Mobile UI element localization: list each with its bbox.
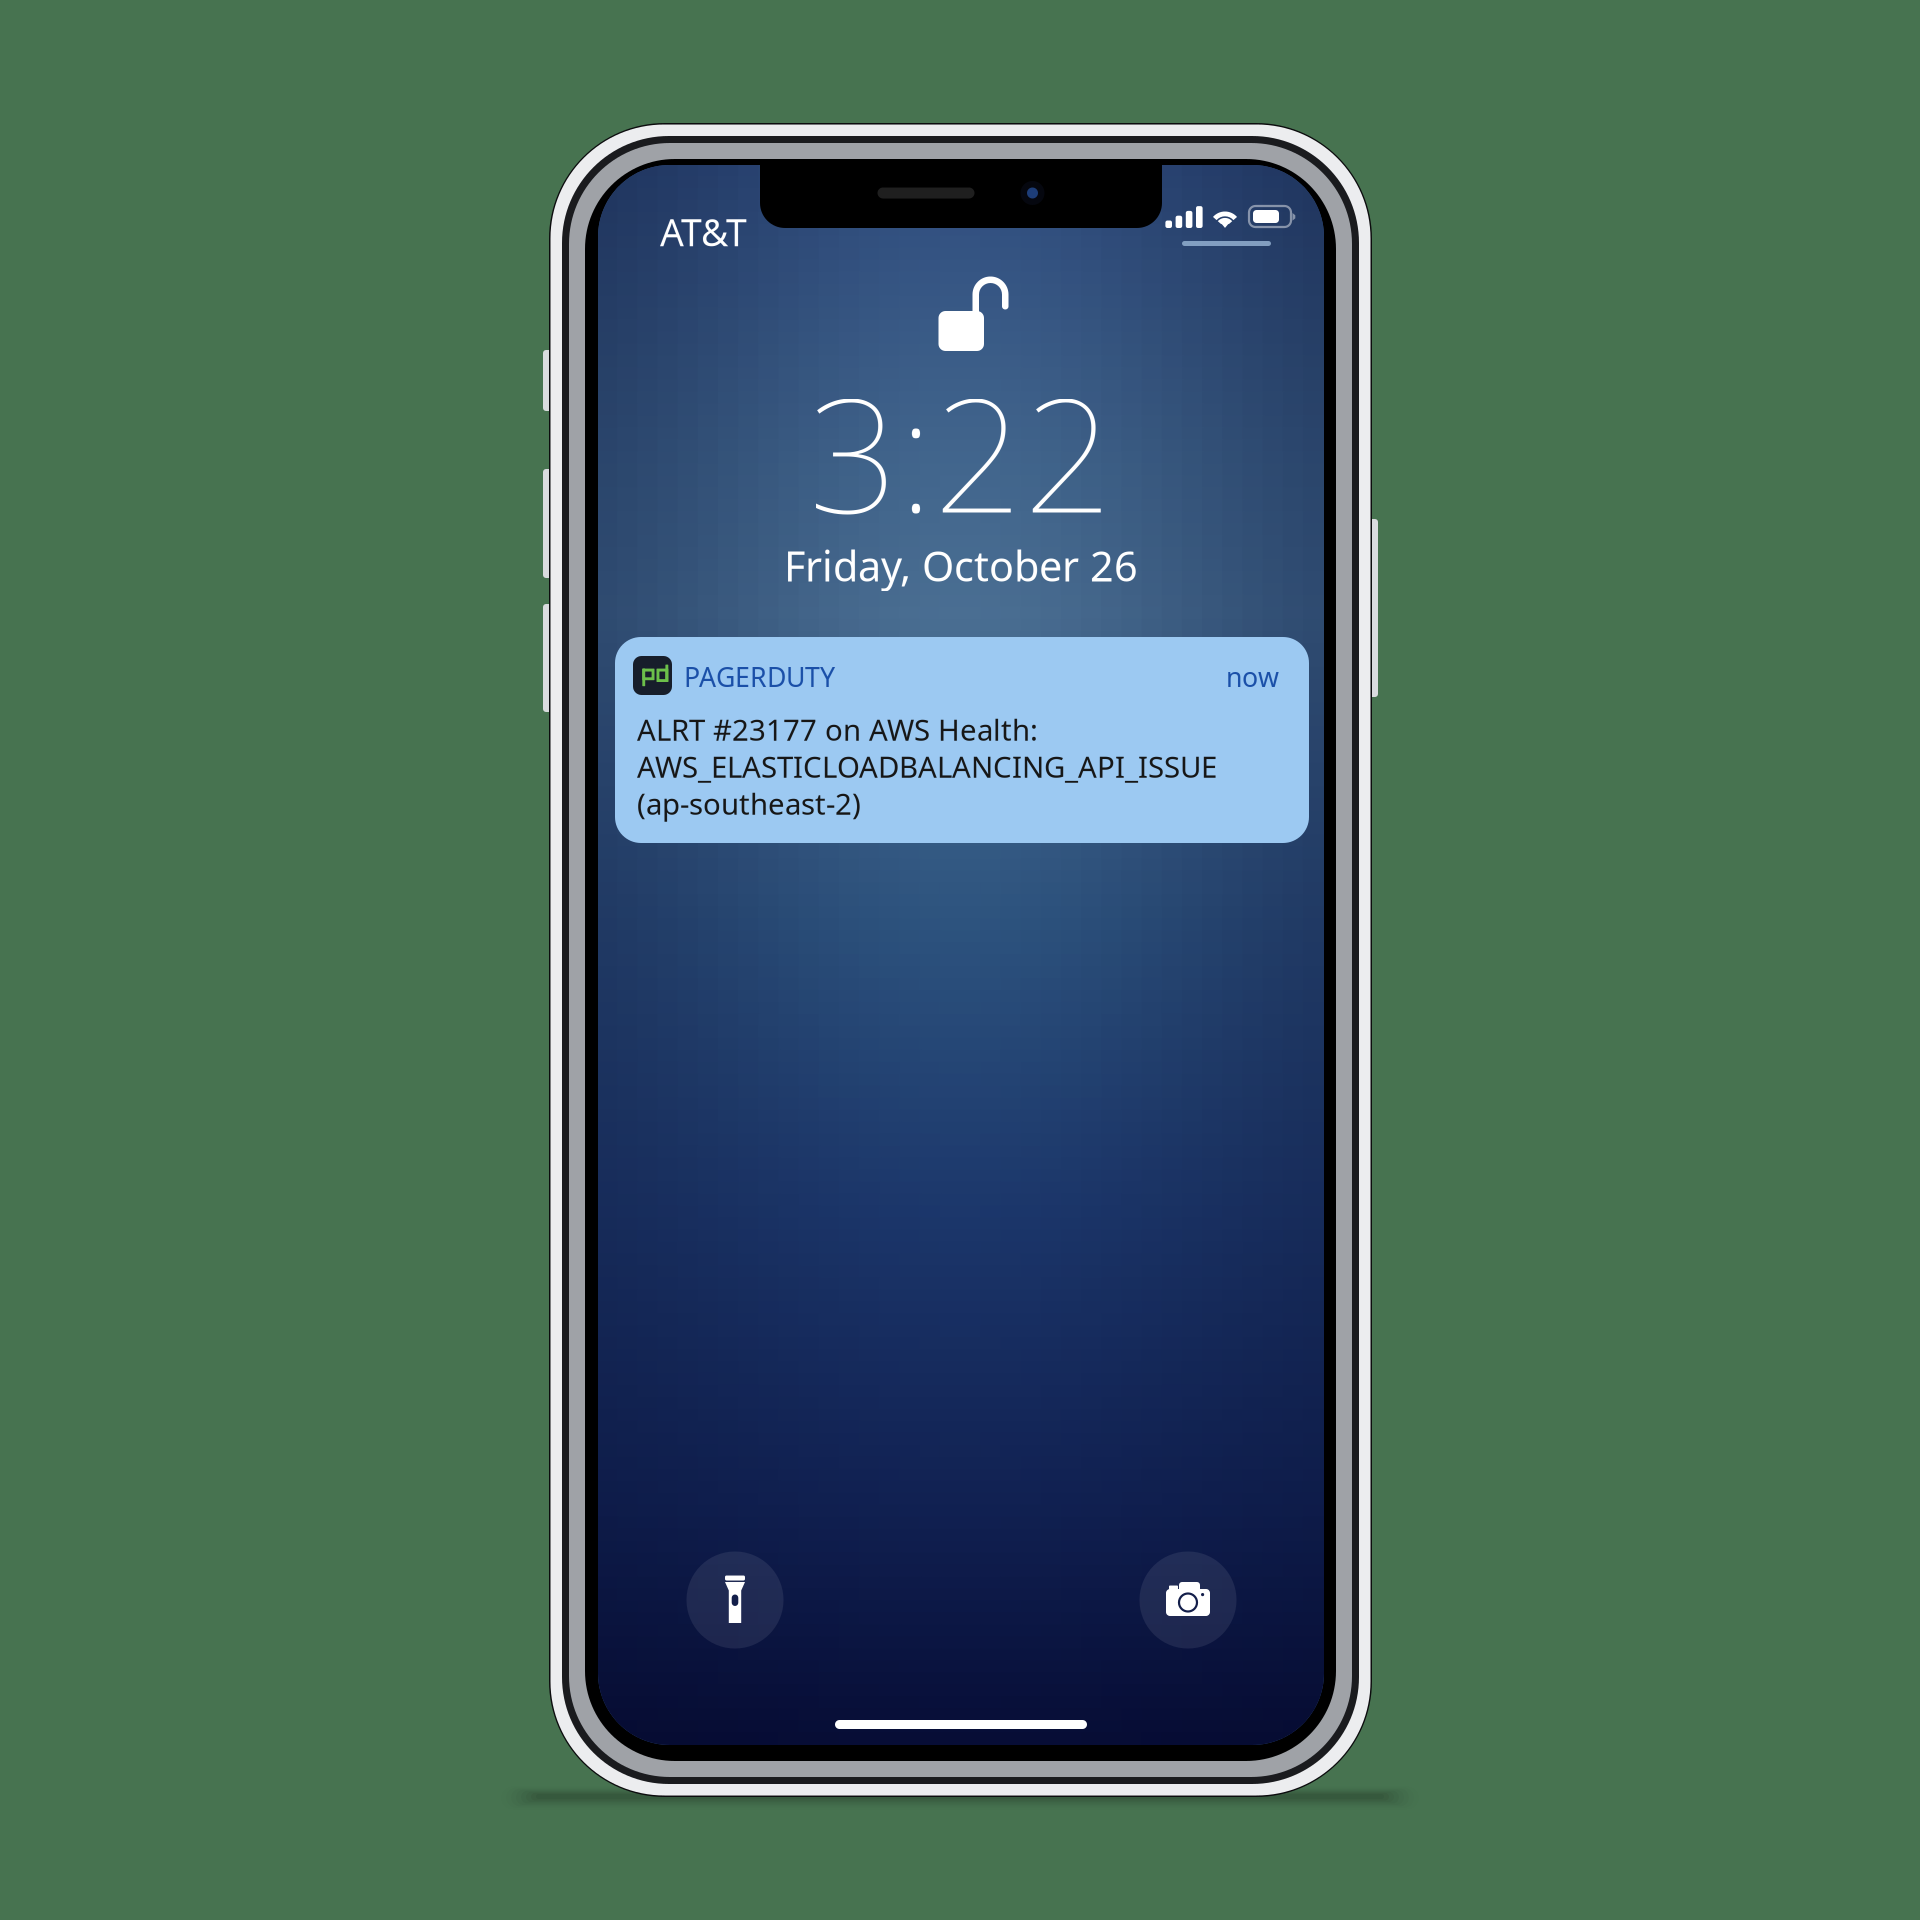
staticText: AWS_ELASTICLOADBALANCING_API_ISSUE (637, 747, 1217, 786)
staticText: PAGERDUTY (684, 659, 835, 694)
staticText: 3:22 (808, 347, 1113, 556)
staticText: AT&T (660, 207, 747, 257)
button[interactable]: Camera (1139, 1551, 1236, 1648)
button[interactable]: Flashlight (686, 1551, 783, 1648)
staticText: Friday, October 26 (784, 538, 1138, 593)
staticText: ALRT #23177 on AWS Health: (637, 710, 1038, 749)
staticText: (ap-southeast-2) (637, 784, 861, 823)
button[interactable]: PAGERDUTY (615, 637, 1309, 843)
staticText: now (1226, 659, 1279, 694)
